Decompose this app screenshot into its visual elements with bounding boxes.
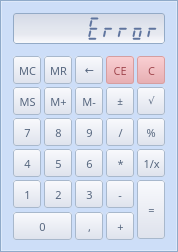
staticText: - xyxy=(118,187,122,202)
staticText: + xyxy=(117,219,124,234)
staticText: 6 xyxy=(86,156,93,171)
staticText: 0 xyxy=(39,219,46,234)
staticText: M- xyxy=(82,94,96,109)
staticText: 7 xyxy=(24,125,31,140)
button[interactable]: + xyxy=(106,212,134,240)
staticText: 3 xyxy=(86,187,93,202)
staticText: 5 xyxy=(55,156,62,171)
staticText: 8 xyxy=(55,125,62,140)
button[interactable]: CE xyxy=(106,56,134,84)
button[interactable]: √ xyxy=(137,87,165,115)
staticText: C xyxy=(148,63,155,78)
button[interactable]: 5 xyxy=(44,149,72,177)
staticText: MR xyxy=(50,63,67,78)
button[interactable]: 2 xyxy=(44,180,72,208)
button[interactable]: 4 xyxy=(13,149,41,177)
button[interactable]: C xyxy=(137,56,165,84)
button[interactable]: Backspace xyxy=(75,56,103,84)
button[interactable]: 8 xyxy=(44,118,72,146)
staticText: 2 xyxy=(55,187,62,202)
staticText: 9 xyxy=(86,125,93,140)
button[interactable]: MR xyxy=(44,56,72,84)
staticText: CE xyxy=(113,63,127,78)
button[interactable]: ± xyxy=(106,87,134,115)
staticText: * xyxy=(117,156,124,171)
button[interactable]: 7 xyxy=(13,118,41,146)
button[interactable]: = xyxy=(137,180,165,239)
button[interactable]: / xyxy=(106,118,134,146)
button[interactable]: 1/x xyxy=(137,149,165,177)
button[interactable]: * xyxy=(106,149,134,177)
button[interactable]: MS xyxy=(13,87,41,115)
staticText: / xyxy=(118,125,123,140)
button[interactable]: M- xyxy=(75,87,103,115)
button[interactable]: M+ xyxy=(44,87,72,115)
button[interactable]: 9 xyxy=(75,118,103,146)
staticText: ± xyxy=(117,94,123,108)
staticText: MS xyxy=(19,94,36,109)
staticText: = xyxy=(148,202,155,217)
staticText: M+ xyxy=(50,94,67,109)
staticText: ← xyxy=(84,64,94,77)
button[interactable]: 6 xyxy=(75,149,103,177)
button[interactable]: MC xyxy=(13,56,41,84)
staticText: MC xyxy=(19,63,36,78)
staticText: % xyxy=(146,125,156,140)
staticText: 1 xyxy=(24,187,31,202)
button[interactable]: 0 xyxy=(13,212,72,240)
button[interactable]: 3 xyxy=(75,180,103,208)
staticText: 1/x xyxy=(143,156,160,171)
button[interactable]: % xyxy=(137,118,165,146)
button[interactable]: 1 xyxy=(13,180,41,208)
staticText: 4 xyxy=(24,156,31,171)
button[interactable]: - xyxy=(106,180,134,208)
staticText: , xyxy=(88,219,91,234)
button[interactable]: , xyxy=(75,212,103,240)
staticText: √ xyxy=(148,95,155,107)
